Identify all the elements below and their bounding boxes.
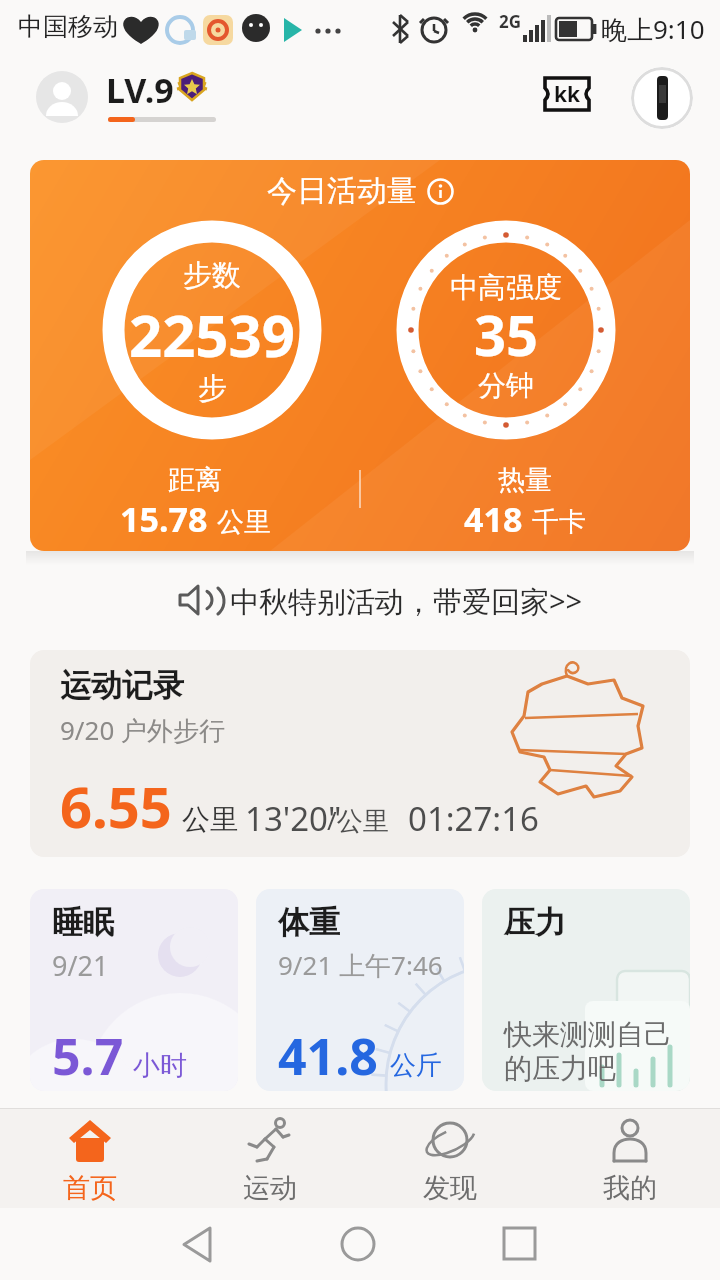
staticText: 01:27:16 [408, 796, 539, 841]
staticText: 的压力吧 [504, 1051, 616, 1086]
staticText: 9/21 上午7:46 [278, 947, 443, 983]
staticText: 中高强度 [450, 270, 562, 305]
staticText: 首页 [63, 1171, 117, 1205]
button[interactable]: 压力 [482, 889, 690, 1091]
staticText: LV.9 [106, 67, 174, 113]
button[interactable]: 发现 [360, 1109, 540, 1208]
staticText: 公里 [217, 505, 271, 539]
button[interactable] [240, 1208, 480, 1280]
staticText: 小时 [133, 1049, 187, 1083]
button[interactable] [631, 67, 693, 129]
staticText: 15.78 [120, 496, 208, 542]
staticText: 热量 [498, 463, 552, 497]
staticText: 快来测测自己 [504, 1017, 672, 1052]
button[interactable]: kk [543, 76, 591, 112]
staticText: 9/20 户外步行 [60, 712, 226, 748]
button[interactable] [480, 1208, 720, 1280]
staticText: 6.55 [60, 768, 172, 844]
staticText: 22539 [129, 295, 295, 374]
button[interactable]: 睡眠 [30, 889, 238, 1091]
staticText: 公里 [182, 802, 238, 837]
staticText: 运动记录 [60, 666, 184, 705]
staticText: 运动 [243, 1171, 297, 1205]
staticText: 分钟 [478, 368, 534, 403]
button[interactable]: 我的 [540, 1109, 720, 1208]
button[interactable]: 运动记录 [30, 650, 690, 857]
staticText: 5.7 [52, 1022, 124, 1090]
button[interactable]: 运动 [180, 1109, 360, 1208]
staticText: 睡眠 [52, 903, 114, 942]
staticText: /公里 [327, 802, 389, 838]
staticText: 步数 [183, 257, 241, 294]
staticText: 压力 [504, 903, 566, 942]
staticText: 公斤 [390, 1049, 442, 1082]
staticText: 13'20" [245, 796, 342, 841]
button[interactable] [36, 71, 88, 123]
staticText: 今日活动量 [267, 172, 417, 210]
staticText: 2G [499, 10, 522, 33]
button[interactable]: 中秋特别活动，带爱回家>> [0, 551, 720, 650]
staticText: 体重 [278, 903, 340, 942]
staticText: 41.8 [278, 1022, 378, 1090]
staticText: kk [554, 80, 581, 109]
staticText: 我的 [603, 1171, 657, 1205]
staticText: 9/21 [52, 947, 109, 984]
staticText: 发现 [423, 1171, 477, 1205]
staticText: 中国移动 [18, 11, 118, 42]
button[interactable]: 今日活动量 [30, 160, 690, 551]
staticText: 晚上9:10 [601, 11, 705, 47]
staticText: 35 [474, 296, 539, 372]
staticText: 步 [198, 370, 227, 407]
staticText: 418 [464, 496, 523, 542]
staticText: 千卡 [532, 505, 586, 539]
staticText: 中秋特别活动，带爱回家>> [230, 581, 583, 621]
button[interactable] [0, 1208, 240, 1280]
button[interactable]: 体重 [256, 889, 464, 1091]
button[interactable]: 首页 [0, 1109, 180, 1208]
staticText: 距离 [168, 463, 222, 497]
